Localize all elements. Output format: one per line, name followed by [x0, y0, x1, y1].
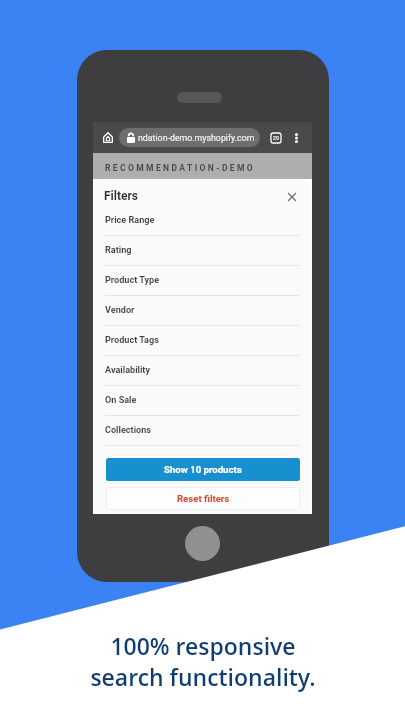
staticText: search functionality.: [90, 661, 316, 692]
staticText: Price Range: [105, 215, 155, 226]
button[interactable]: Show 10 products: [106, 458, 300, 481]
button[interactable]: Collections: [94, 416, 310, 446]
staticText: Vendor: [105, 305, 135, 316]
staticText: Reset filters: [177, 493, 230, 504]
staticText: Availability: [105, 365, 151, 376]
button[interactable]: Vendor: [94, 296, 310, 326]
button[interactable]: Product Tags: [94, 326, 310, 356]
button[interactable]: ndation-demo.myshopify.com: [119, 128, 260, 147]
button[interactable]: Tabs: [269, 131, 283, 145]
button[interactable]: Reset filters: [106, 487, 300, 510]
staticText: Product Type: [105, 275, 160, 286]
button[interactable]: Availability: [94, 356, 310, 386]
staticText: On Sale: [105, 395, 137, 406]
button[interactable]: On Sale: [94, 386, 310, 416]
staticText: ndation-demo.myshopify.com: [138, 133, 255, 143]
staticText: Product Tags: [105, 335, 159, 346]
staticText: Filters: [104, 189, 139, 203]
staticText: Collections: [105, 425, 151, 436]
staticText: Rating: [105, 245, 132, 256]
staticText: RECOMMENDATION-DEMO: [105, 163, 256, 173]
button[interactable]: Close: [283, 188, 301, 206]
button[interactable]: Rating: [94, 236, 310, 266]
button[interactable]: Home: [97, 126, 119, 148]
staticText: Show 10 products: [164, 464, 242, 475]
staticText: 29: [273, 135, 279, 141]
button[interactable]: Price Range: [94, 206, 310, 236]
button[interactable]: Home button: [185, 526, 220, 561]
button[interactable]: Product Type: [94, 266, 310, 296]
staticText: 100% responsive: [110, 630, 296, 661]
button[interactable]: More options: [289, 131, 303, 145]
